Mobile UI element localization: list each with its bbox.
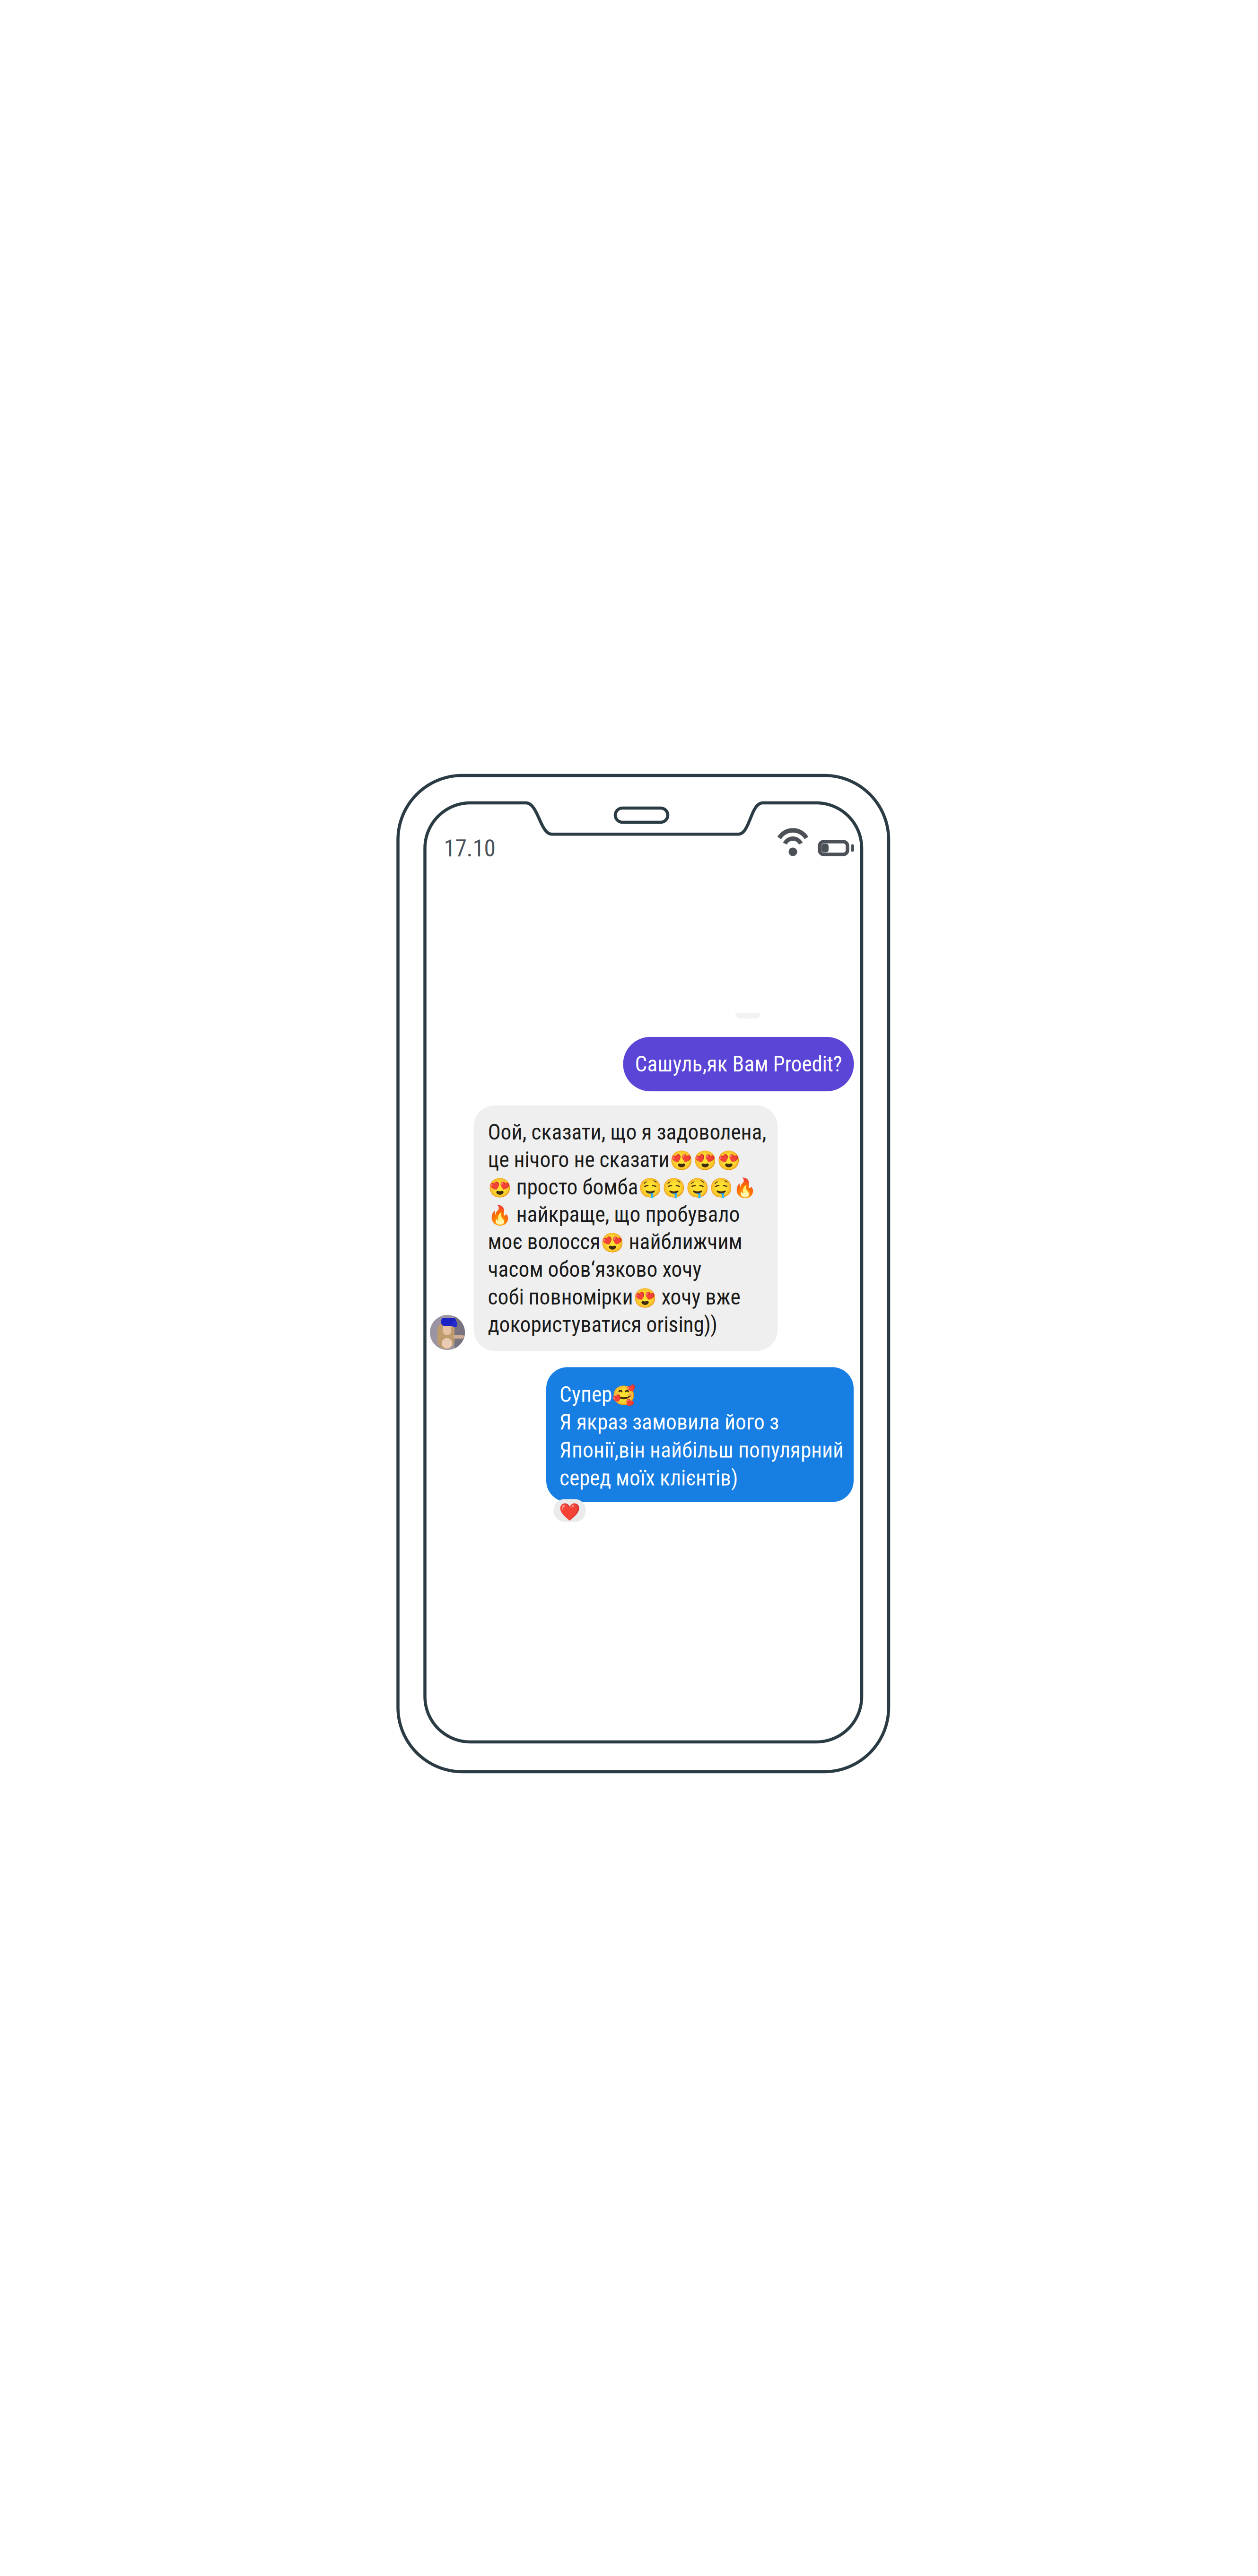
staticText: Сашуль,як Вам Proedit? [635,1052,842,1077]
staticText: це нічого не сказати😍😍😍 [488,1148,740,1172]
button[interactable]: Сашуль,як Вам Proedit? [623,1037,854,1091]
staticText: Японії,він найбільш популярний [559,1438,844,1463]
staticText: 🔥 найкраще, що пробувало [488,1202,740,1227]
staticText: моє волосся😍 найближчим [488,1230,742,1254]
button[interactable]: Оой, сказати, що я задоволена, [474,1105,778,1351]
staticText: серед моїх клієнтів) [559,1466,738,1491]
staticText: часом обов‘язково хочу [488,1257,702,1282]
staticText: Супер🥰 [559,1382,636,1407]
staticText: 😍 просто бомба🤤🤤🤤🤤🔥 [488,1175,756,1199]
button[interactable]: Heart reaction [554,1499,586,1522]
staticText: собі повномірки😍 хочу вже [488,1285,740,1309]
staticText: Оой, сказати, що я задоволена, [488,1120,766,1145]
staticText: 17.10 [444,835,495,862]
staticText: ❤️ [559,1502,580,1522]
staticText: докористуватися orising)) [488,1312,717,1337]
button[interactable]: Супер🥰 [546,1367,854,1502]
staticText: Я якраз замовила його з [559,1410,779,1435]
